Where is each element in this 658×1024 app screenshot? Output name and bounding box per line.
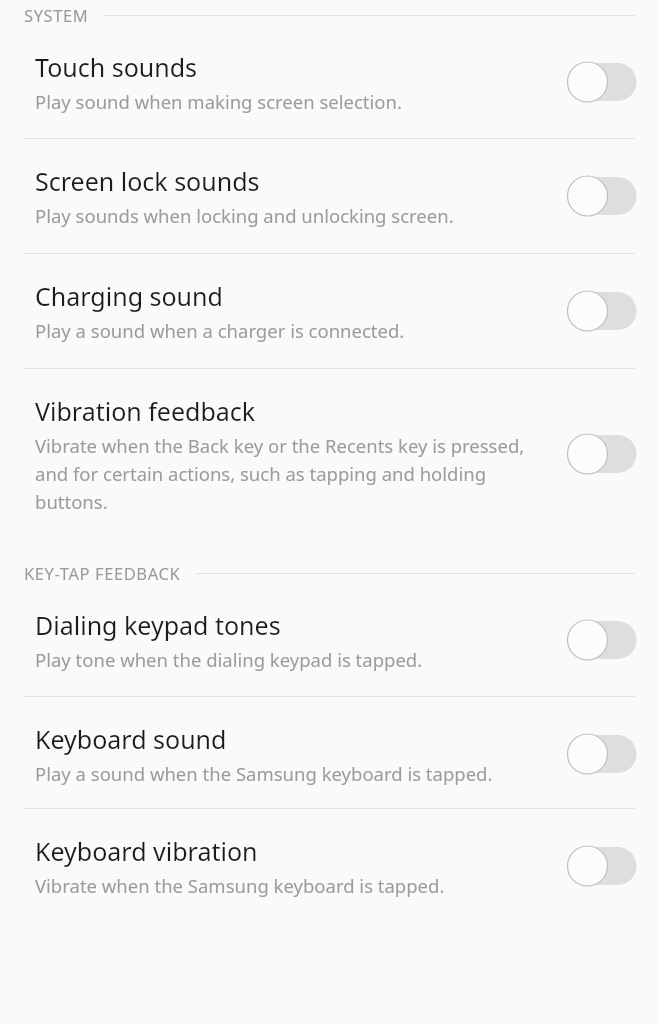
staticText: Play a sound when the Samsung keyboard i… [35,761,493,786]
staticText: Screen lock sounds [35,164,260,198]
staticText: Play a sound when a charger is connected… [35,318,405,343]
staticText: Keyboard vibration [35,834,258,868]
button[interactable]: Touch sounds [0,26,658,138]
button[interactable]: Screen lock sounds [0,139,658,253]
staticText: SYSTEM [24,4,89,26]
button[interactable]: Keyboard sound [566,732,638,776]
button[interactable]: Vibration feedback [0,369,658,536]
staticText: Touch sounds [35,50,198,84]
staticText: Play sound when making screen selection. [35,89,402,114]
staticText: Dialing keypad tones [35,608,281,642]
staticText: Play sounds when locking and unlocking s… [35,203,454,228]
staticText: Keyboard sound [35,722,227,756]
button[interactable]: Charging sound [0,254,658,368]
staticText: Play tone when the dialing keypad is tap… [35,647,423,672]
button[interactable]: Vibration feedback [566,432,638,476]
staticText: Vibration feedback [35,394,256,428]
staticText: Charging sound [35,279,223,313]
button[interactable]: Screen lock sounds [566,174,638,218]
button[interactable]: Charging sound [566,289,638,333]
button[interactable]: Keyboard vibration [0,809,658,923]
button[interactable]: Keyboard vibration [566,844,638,888]
staticText: Vibrate when the Samsung keyboard is tap… [35,873,445,898]
button[interactable]: Touch sounds [566,60,638,104]
staticText: Vibrate when the Back key or the Recents… [35,433,554,514]
staticText: KEY-TAP FEEDBACK [24,562,181,584]
button[interactable]: Dialing keypad tones [566,618,638,662]
button[interactable]: Dialing keypad tones [0,584,658,696]
button[interactable]: Keyboard sound [0,697,658,808]
